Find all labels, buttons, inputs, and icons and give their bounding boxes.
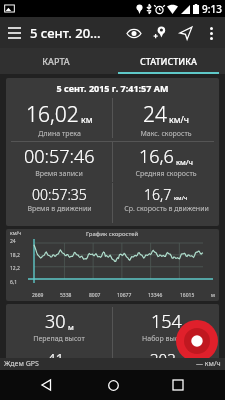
button[interactable]: КАРТА — [0, 48, 112, 74]
staticText: 24 — [10, 238, 16, 245]
staticText: 41 — [47, 349, 65, 368]
staticText: Длина трека — [38, 129, 81, 139]
staticText: 8007 — [89, 292, 101, 299]
staticText: м — [211, 292, 215, 299]
staticText: км/ч — [176, 157, 194, 167]
staticText: км/ч — [169, 114, 189, 126]
staticText: 6,1 — [10, 279, 18, 286]
staticText: 10677 — [117, 292, 132, 299]
staticText: км/ч — [174, 194, 188, 202]
staticText: 154 — [151, 309, 182, 334]
button[interactable]: СТАТИСТИКА — [112, 48, 225, 74]
staticText: 13346 — [148, 292, 163, 299]
button[interactable]: Recent apps — [159, 370, 197, 400]
staticText: 18,2 — [10, 252, 20, 259]
staticText: КАРТА — [42, 55, 70, 67]
staticText: 00:57:35 — [32, 185, 87, 204]
button[interactable]: Back — [28, 370, 66, 400]
staticText: Ср. скорость в движении — [124, 204, 209, 214]
staticText: 16,6 — [139, 144, 174, 169]
staticText: 00:57:46 — [24, 144, 95, 169]
staticText: — км/ч — [196, 359, 221, 369]
staticText: 30 — [45, 309, 66, 334]
staticText: Время в движении — [27, 204, 92, 214]
staticText: 303 — [150, 349, 176, 368]
staticText: 5 сент. 2015 г. 7:41:57 AM — [6, 82, 219, 94]
button[interactable]: Navigate — [173, 20, 199, 46]
staticText: Набор высоты — [142, 334, 191, 344]
button[interactable]: Show track — [121, 20, 147, 46]
button[interactable]: More options — [199, 21, 223, 45]
staticText: Время записи — [35, 169, 83, 179]
staticText: км/ч — [10, 230, 22, 237]
staticText: м — [67, 357, 72, 366]
staticText: 2669 — [32, 292, 44, 299]
staticText: График скоростей — [86, 230, 139, 238]
staticText: 5338 — [60, 292, 72, 299]
staticText: м — [178, 357, 183, 366]
button[interactable]: Menu — [0, 19, 28, 47]
staticText: 16,02 — [26, 100, 79, 129]
staticText: м — [68, 322, 74, 332]
staticText: 24 — [143, 100, 167, 129]
staticText: 9:13 — [202, 2, 222, 16]
button[interactable]: Start recording — [176, 320, 218, 362]
staticText: 16,7 — [144, 185, 172, 204]
staticText: 5 сент. 20… — [30, 24, 101, 42]
staticText: Средняя скорость — [135, 169, 197, 179]
staticText: Перепад высот — [33, 334, 85, 344]
staticText: Ждем GPS — [4, 359, 39, 369]
staticText: 16015 — [180, 292, 195, 299]
button[interactable]: Home — [94, 370, 132, 400]
staticText: Макс. скорость — [140, 129, 192, 139]
staticText: км — [81, 114, 93, 126]
staticText: 12,2 — [10, 265, 20, 272]
button[interactable]: Add waypoint — [147, 20, 173, 46]
staticText: СТАТИСТИКА — [140, 55, 197, 67]
